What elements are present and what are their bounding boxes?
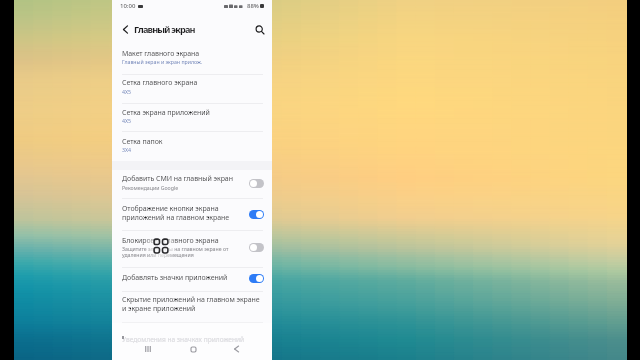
button[interactable] xyxy=(112,201,272,227)
button[interactable]: Toggle on xyxy=(249,274,264,283)
staticText: Главный экран и экран прилож. xyxy=(122,58,203,65)
staticText: Добавить СМИ на главный экран xyxy=(122,174,233,184)
staticText: 4X5 xyxy=(122,117,131,124)
staticText: 4X5 xyxy=(122,88,131,95)
staticText: 88% xyxy=(247,2,259,10)
button[interactable]: Recent apps xyxy=(140,341,156,357)
button[interactable]: Toggle off xyxy=(249,179,264,188)
staticText: Отображение кнопки экрана приложений на … xyxy=(122,204,230,222)
staticText: Сетка главного экрана xyxy=(122,78,198,88)
staticText: Макет главного экрана xyxy=(122,49,200,59)
staticText: Рекомендации Google xyxy=(122,184,179,191)
button[interactable]: Back xyxy=(119,23,132,36)
button[interactable]: Home xyxy=(185,341,201,357)
staticText: Главный экран xyxy=(134,23,195,36)
staticText: 10:00 xyxy=(120,2,136,10)
button[interactable]: Скрытие приложений на главном экране и э… xyxy=(122,295,260,313)
staticText: 3X4 xyxy=(122,146,131,153)
button[interactable] xyxy=(112,75,272,102)
staticText: Сетка экрана приложений xyxy=(122,108,210,118)
button[interactable]: Back xyxy=(228,341,244,357)
staticText: Уведомления на значках приложений xyxy=(122,335,245,344)
button[interactable] xyxy=(112,134,272,161)
button[interactable]: Search xyxy=(253,23,267,37)
staticText: Защитите элементы на главном экране от у… xyxy=(122,245,229,259)
button[interactable]: Toggle on xyxy=(249,210,264,219)
staticText: Добавлять значки приложений xyxy=(122,273,228,283)
button[interactable] xyxy=(112,171,272,197)
button[interactable] xyxy=(112,46,272,73)
button[interactable] xyxy=(112,270,272,296)
button[interactable]: Toggle off xyxy=(249,243,264,252)
staticText: Скрытие приложений на главном экране и э… xyxy=(122,295,260,313)
button[interactable] xyxy=(112,105,272,132)
staticText: Блокировка главного экрана xyxy=(122,236,219,246)
staticText: Сетка папок xyxy=(122,137,163,147)
button[interactable] xyxy=(112,233,272,259)
